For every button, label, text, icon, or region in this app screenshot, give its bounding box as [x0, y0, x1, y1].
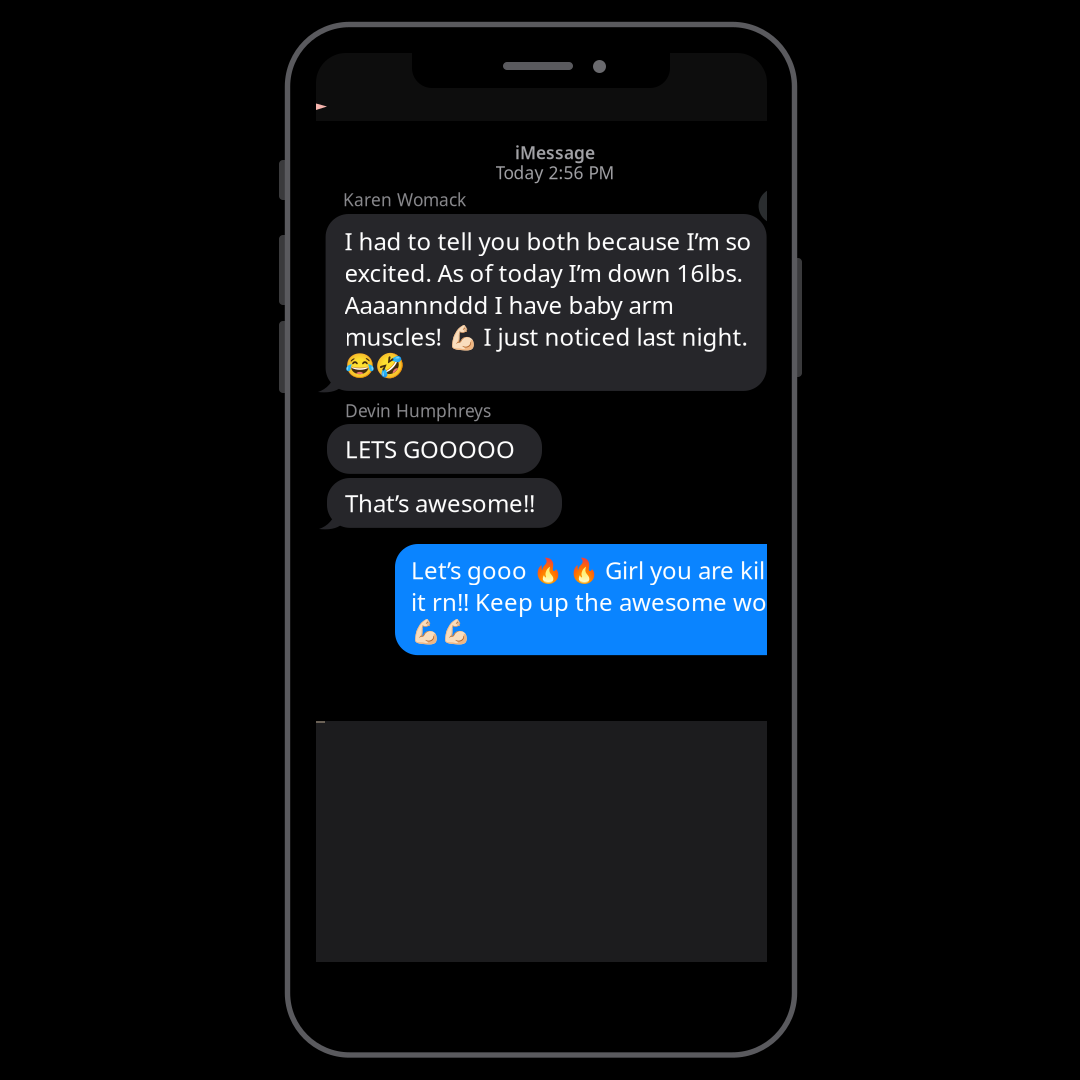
staticText: LETS GOOOOO: [345, 433, 515, 465]
staticText: Today 2:56 PM: [495, 161, 614, 184]
staticText: Devin Humphreys: [345, 399, 491, 422]
staticText: Karen Womack: [343, 188, 466, 211]
staticText: I had to tell you both because I’m so ex…: [345, 225, 752, 380]
button[interactable]: I had to tell you both because I’m so ex…: [326, 214, 767, 391]
button[interactable]: That’s awesome!!: [327, 478, 562, 528]
staticText: Let’s gooo 🔥 🔥 Girl you are killing it r…: [411, 554, 807, 645]
button[interactable]: LETS GOOOOO: [327, 424, 542, 474]
staticText: That’s awesome!!: [345, 487, 535, 519]
staticText: iMessage: [515, 141, 595, 164]
button[interactable]: Let’s gooo 🔥 🔥 Girl you are killing it r…: [395, 544, 827, 655]
